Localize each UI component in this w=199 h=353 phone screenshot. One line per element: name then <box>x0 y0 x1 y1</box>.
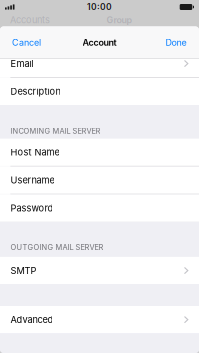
staticText: Group <box>106 15 132 25</box>
button[interactable]: Username <box>0 166 199 194</box>
button[interactable]: Description <box>0 78 199 105</box>
button[interactable]: SMTP <box>0 257 199 284</box>
staticText: Cancel <box>12 37 41 48</box>
staticText: Password <box>10 202 53 214</box>
button[interactable]: Email <box>0 50 199 77</box>
staticText: Done <box>166 37 187 48</box>
button[interactable]: Cancel <box>12 37 41 48</box>
staticText: 10:00 <box>87 2 112 12</box>
button[interactable]: Host Name <box>0 139 199 166</box>
staticText: Advanced <box>10 314 53 325</box>
button[interactable]: Password <box>0 194 199 222</box>
button[interactable]: Advanced <box>0 306 199 333</box>
staticText: SMTP <box>10 265 36 276</box>
button[interactable]: Done <box>166 37 187 48</box>
staticText: Email <box>10 58 33 69</box>
staticText: Description <box>10 86 60 97</box>
staticText: Account <box>82 37 116 48</box>
staticText: INCOMING MAIL SERVER <box>10 127 100 136</box>
staticText: Accounts <box>10 14 50 25</box>
staticText: Username <box>10 175 54 186</box>
staticText: Host Name <box>10 147 59 158</box>
staticText: OUTGOING MAIL SERVER <box>10 243 103 252</box>
